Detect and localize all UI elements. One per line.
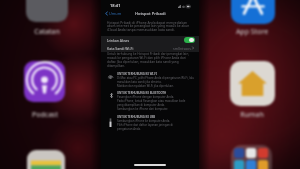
staticText: Matikan dan nyalakan Wi-Fi jika diperluk… [117, 84, 174, 88]
staticText: 18:41 [110, 3, 121, 9]
staticText: yang ditampilkan di komputer Anda. [117, 103, 165, 107]
staticText: UNTUK TERHUBUNG KE WI-FI [117, 72, 157, 76]
staticText: Hotspot Pribadi di iPhone Anda dapat men… [107, 20, 193, 32]
staticText: Rumah [222, 110, 282, 120]
staticText: Pilih iPhone dari daftar layanan jaringa… [117, 123, 173, 127]
staticText: Catatan [17, 27, 77, 37]
staticText: Untuk terhubung ke Hotspot Pribadi dari … [107, 52, 193, 68]
staticText: Pada iPhone, ketuk Pasangkan atau masukk… [117, 99, 186, 103]
staticText: Kata Sandi Wi-Fi [107, 46, 134, 51]
staticText: Hotspot Pribadi [135, 11, 166, 16]
staticText: Sambungkan ke iPhone dari komputer. [117, 107, 168, 111]
button[interactable]: Izinkan Akses [101, 36, 199, 44]
staticText: UNTUK TERHUBUNG KE BLUETOOTH [117, 91, 167, 95]
staticText: Pasangkan iPhone dengan komputer Anda. [117, 95, 175, 99]
button[interactable] [184, 37, 195, 43]
staticText: masukkan kata sandi jika diminta. [117, 80, 162, 84]
staticText: pengaturan Anda. [117, 127, 141, 131]
staticText: Sambungkan iPhone ke komputer Anda. [117, 119, 171, 123]
staticText: App Store [222, 27, 282, 37]
button[interactable]: Umum [101, 11, 124, 16]
staticText: Umum [109, 11, 122, 16]
staticText: UNTUK TERHUBUNG KE USB [117, 115, 156, 119]
staticText: sm0ntsaos [173, 46, 191, 51]
button[interactable]: Kata Sandi Wi-Fi [101, 44, 199, 52]
staticText: Di Mac atau PC, pilih iPhone Anda di pen… [117, 76, 194, 80]
staticText: Podcast [15, 110, 75, 120]
staticText: Izinkan Akses [107, 38, 130, 43]
